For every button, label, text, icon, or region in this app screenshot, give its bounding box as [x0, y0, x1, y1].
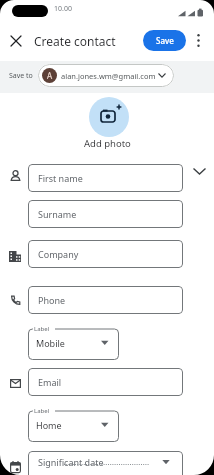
button[interactable] — [190, 162, 209, 181]
button[interactable] — [89, 97, 129, 137]
button[interactable]: Phone — [28, 286, 183, 314]
button[interactable]: Label — [28, 324, 119, 360]
button[interactable]: Label — [28, 406, 119, 442]
staticText: Email — [38, 376, 62, 388]
button[interactable]: Surname — [28, 200, 183, 228]
button[interactable]: A — [38, 64, 174, 87]
staticText: Phone — [38, 294, 66, 306]
staticText: Label — [34, 325, 50, 333]
button[interactable]: Email — [28, 368, 183, 396]
button[interactable]: First name — [28, 164, 183, 192]
staticText: Mobile — [36, 337, 65, 349]
staticText: alan.jones.wm@gmail.com — [61, 71, 156, 81]
staticText: Company — [38, 248, 79, 260]
staticText: First name — [38, 172, 83, 184]
staticText: Save — [156, 35, 174, 46]
staticText: Home — [36, 419, 62, 431]
button[interactable]: Save — [143, 30, 186, 51]
staticText: 10.00 — [54, 4, 72, 14]
button[interactable]: Company — [28, 240, 183, 268]
button[interactable] — [6, 31, 26, 51]
button[interactable]: Significant date — [28, 451, 183, 475]
staticText: A — [47, 70, 53, 81]
button[interactable] — [194, 33, 203, 48]
staticText: Significant date — [38, 456, 104, 468]
staticText: Surname — [38, 208, 77, 220]
staticText: Add photo — [84, 137, 131, 150]
staticText: Label — [34, 407, 50, 415]
staticText: Create contact — [34, 33, 116, 49]
staticText: Save to — [9, 71, 33, 81]
